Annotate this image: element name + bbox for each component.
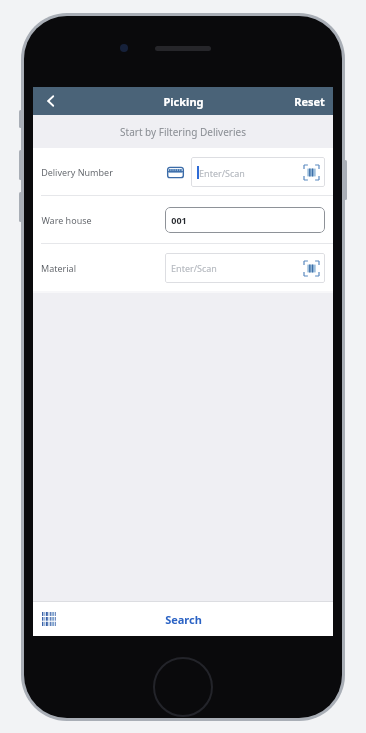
staticText: Start by Filtering Deliveries xyxy=(120,125,246,139)
button[interactable]: Reset xyxy=(286,87,333,115)
button[interactable]: Scan xyxy=(37,607,61,631)
staticText: Enter/Scan xyxy=(171,262,217,274)
button[interactable]: Material xyxy=(33,244,333,291)
button[interactable]: Enter/Scan xyxy=(191,157,325,187)
button[interactable]: Ware house xyxy=(33,196,333,243)
staticText: Reset xyxy=(294,94,325,109)
staticText: Enter/Scan xyxy=(199,167,245,179)
staticText: 001 xyxy=(171,214,187,226)
button[interactable]: Search xyxy=(151,606,216,633)
button[interactable]: Back xyxy=(33,87,69,115)
staticText: Search xyxy=(165,612,202,627)
button[interactable]: Scan barcode xyxy=(303,260,319,276)
staticText: Picking xyxy=(163,94,204,109)
button[interactable]: Pick delivery xyxy=(165,162,185,182)
staticText: Delivery Number xyxy=(41,166,113,178)
button[interactable]: Scan barcode xyxy=(303,164,319,180)
staticText: Material xyxy=(41,262,76,274)
button[interactable]: 001 xyxy=(165,207,325,233)
staticText: Ware house xyxy=(41,214,92,226)
button[interactable]: Enter/Scan xyxy=(165,253,325,283)
button[interactable]: Delivery Number xyxy=(33,148,333,195)
